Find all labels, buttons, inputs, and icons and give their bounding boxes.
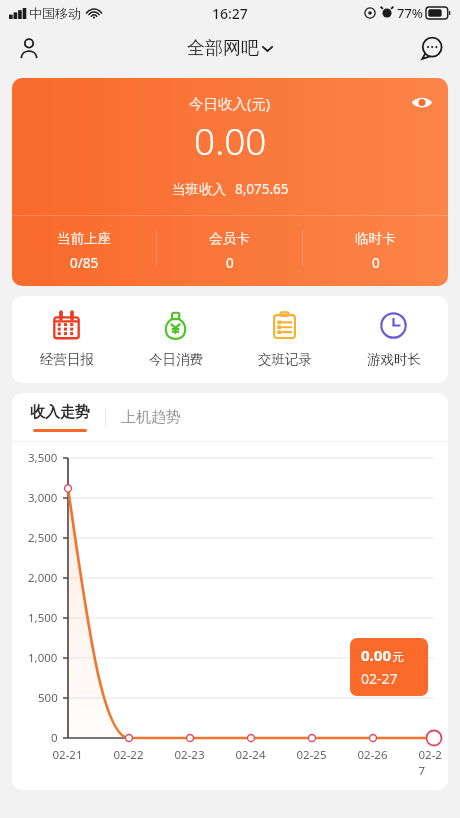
staticText: 上机趋势 xyxy=(121,408,181,427)
staticText: 收入走势 xyxy=(30,403,90,422)
staticText: 16:27 xyxy=(212,4,248,23)
staticText: 0.00 xyxy=(194,115,267,165)
button[interactable]: 临时卡 xyxy=(303,230,448,272)
staticText: 0/85 xyxy=(70,254,99,272)
staticText: 当班收入 xyxy=(172,181,226,198)
staticText: 交班记录 xyxy=(258,351,312,368)
button[interactable]: 今日收入(元) xyxy=(12,78,448,286)
button[interactable]: 交班记录 xyxy=(230,311,339,368)
button[interactable]: 全部网吧 xyxy=(187,37,274,60)
staticText: 今日消费 xyxy=(149,351,203,368)
button[interactable]: 游戏时长 xyxy=(339,311,448,368)
staticText: 当前上座 xyxy=(57,230,111,247)
staticText: 77% xyxy=(397,4,423,22)
button[interactable]: 今日消费 xyxy=(121,311,230,368)
staticText: 经营日报 xyxy=(40,351,94,368)
button[interactable]: Messages xyxy=(412,29,450,67)
staticText: 中国移动 xyxy=(29,5,81,21)
button[interactable]: 上机趋势 xyxy=(121,408,181,427)
button[interactable]: Toggle income visibility xyxy=(407,87,437,117)
button[interactable]: 会员卡 xyxy=(157,230,302,272)
button[interactable]: 收入走势 xyxy=(30,403,90,432)
button[interactable]: 经营日报 xyxy=(12,311,121,368)
staticText: 0 xyxy=(226,254,234,272)
staticText: 游戏时长 xyxy=(367,351,421,368)
staticText: 临时卡 xyxy=(355,230,396,247)
staticText: 0 xyxy=(372,254,380,272)
staticText: 今日收入(元) xyxy=(189,93,271,113)
staticText: 全部网吧 xyxy=(187,37,259,60)
staticText: 8,075.65 xyxy=(235,180,289,198)
button[interactable]: Profile xyxy=(10,29,48,67)
staticText: 会员卡 xyxy=(209,230,250,247)
button[interactable]: 当前上座 xyxy=(12,230,156,272)
